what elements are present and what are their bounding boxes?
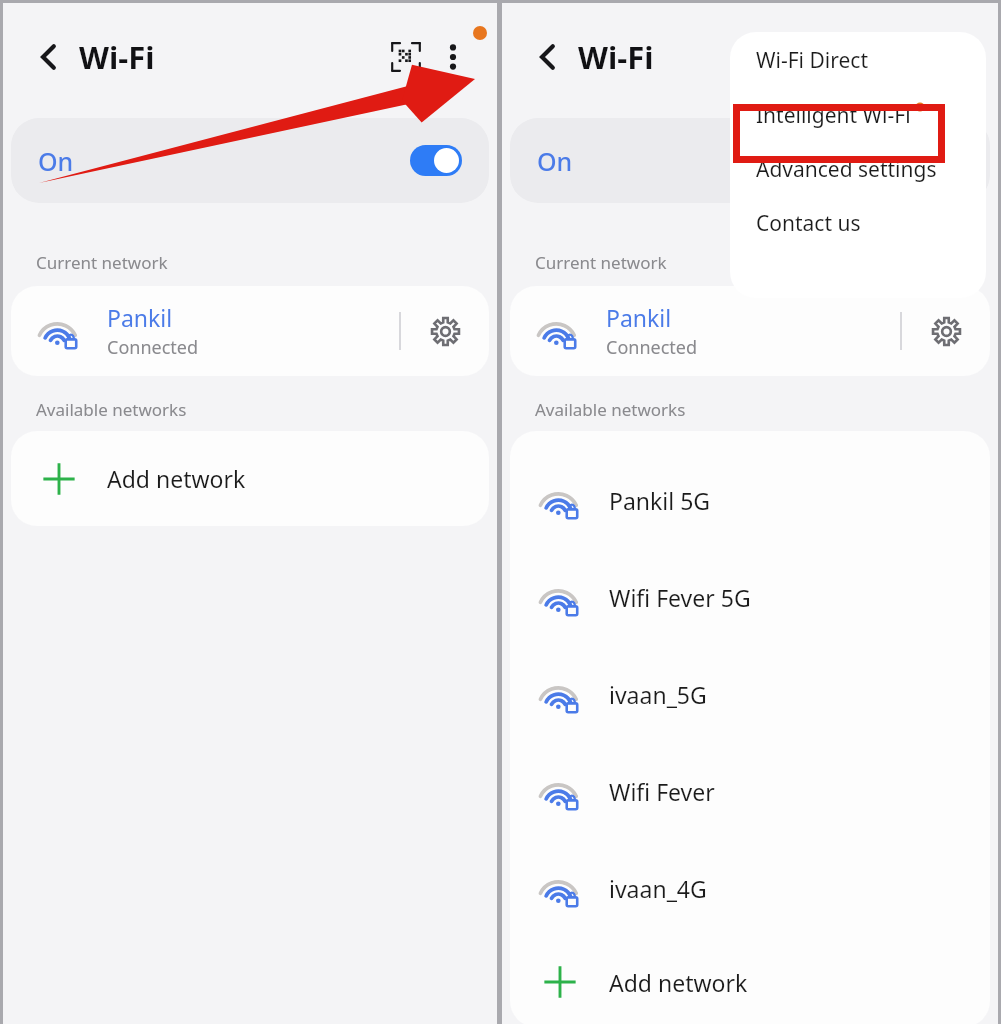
button[interactable]: ivaan_4G: [510, 840, 990, 937]
staticText: Advanced settings: [756, 155, 937, 184]
staticText: Connected: [107, 335, 199, 360]
button[interactable]: Back: [25, 33, 73, 81]
staticText: Add network: [609, 967, 748, 998]
staticText: Current network: [535, 251, 667, 274]
button[interactable]: Back: [524, 33, 572, 81]
staticText: Available networks: [535, 398, 686, 421]
button[interactable]: Network settings: [401, 286, 489, 376]
staticText: On: [537, 144, 573, 178]
button[interactable]: Pankil 5G: [510, 452, 990, 549]
button[interactable]: Add network: [11, 431, 489, 526]
button[interactable]: Contact us: [730, 196, 986, 250]
staticText: Current network: [36, 251, 168, 274]
staticText: Wi-Fi: [578, 36, 654, 78]
staticText: Intelligent Wi-Fi: [756, 101, 911, 130]
button[interactable]: On: [510, 118, 990, 203]
staticText: Pankil: [606, 302, 672, 333]
staticText: Add network: [107, 463, 246, 494]
staticText: On: [38, 144, 74, 178]
button[interactable]: Wi-Fi Direct: [730, 32, 986, 88]
staticText: ivaan_4G: [609, 873, 707, 904]
button[interactable]: Intelligent Wi-Fi: [730, 88, 986, 142]
staticText: Connected: [606, 335, 698, 360]
button[interactable]: On: [11, 118, 489, 203]
button[interactable]: Add network: [510, 937, 990, 1024]
staticText: Wifi Fever 5G: [609, 582, 751, 613]
staticText: Wi-Fi: [79, 36, 155, 78]
staticText: Available networks: [36, 398, 187, 421]
button[interactable]: Network settings: [902, 286, 990, 376]
button[interactable]: ivaan_5G: [510, 646, 990, 743]
staticText: Wi-Fi Direct: [756, 46, 868, 75]
staticText: ivaan_5G: [609, 679, 707, 710]
button[interactable]: Advanced settings: [730, 142, 986, 196]
button[interactable]: Pankil: [510, 286, 990, 376]
staticText: Contact us: [756, 209, 861, 238]
button[interactable]: More options: [430, 34, 476, 80]
button[interactable]: Scan QR code: [383, 34, 429, 80]
staticText: Pankil 5G: [609, 485, 711, 516]
staticText: Wifi Fever: [609, 776, 715, 807]
staticText: Pankil: [107, 302, 173, 333]
button[interactable]: Pankil: [11, 286, 489, 376]
button[interactable]: Wifi Fever: [510, 743, 990, 840]
button[interactable]: Wifi Fever 5G: [510, 549, 990, 646]
